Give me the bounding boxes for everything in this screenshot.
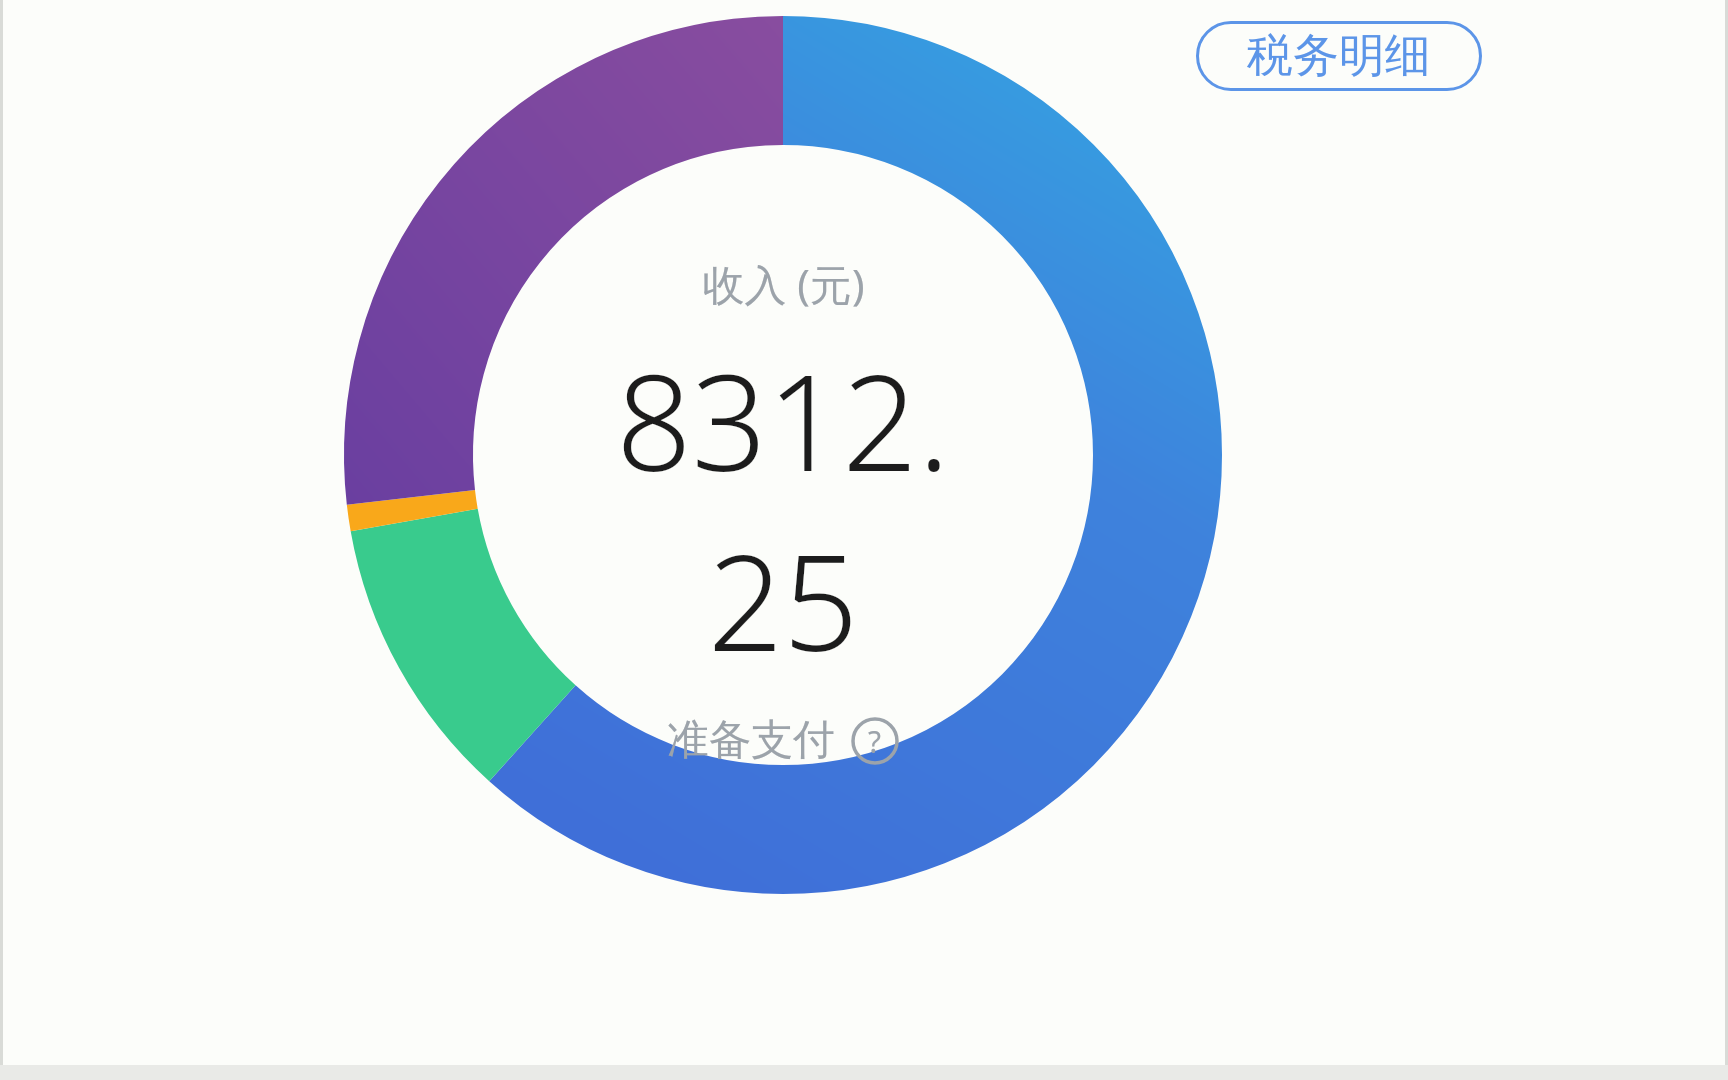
staticText: 准备支付 [667,714,835,767]
staticText: 收入 (元) [702,255,865,312]
button[interactable]: 税务明细 [1196,21,1482,91]
button[interactable]: 帮助 [851,717,899,765]
staticText: ? [868,721,882,762]
staticText: 8312.25 [583,330,983,690]
staticText: 税务明细 [1247,27,1431,85]
